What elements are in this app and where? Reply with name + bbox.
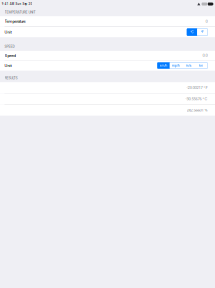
- staticText: 9:41 AM: [2, 2, 14, 6]
- staticText: °F: [201, 30, 204, 34]
- button[interactable]: °C: [187, 28, 197, 36]
- staticText: Speed: [4, 53, 15, 58]
- staticText: Temperature: [4, 19, 25, 24]
- button[interactable]: m/s: [182, 62, 195, 69]
- staticText: mp/h: [172, 64, 180, 67]
- button[interactable]: kn: [195, 62, 208, 69]
- staticText: 0: [206, 19, 208, 24]
- staticText: km/h: [159, 64, 167, 67]
- staticText: SPEED: [4, 45, 14, 49]
- button[interactable]: [0, 93, 215, 104]
- staticText: Sun Sep 20: [15, 2, 32, 6]
- button[interactable]: [0, 82, 215, 93]
- staticText: Unit: [4, 30, 11, 35]
- button[interactable]: Temperature: [0, 16, 215, 26]
- button[interactable]: Speed: [0, 51, 215, 60]
- staticText: 242.56601 %: [187, 108, 208, 113]
- staticText: m/s: [186, 64, 192, 67]
- staticText: Unit: [4, 63, 11, 68]
- staticText: °C: [190, 30, 193, 34]
- button[interactable]: [0, 105, 215, 116]
- staticText: RESULTS: [4, 76, 17, 80]
- staticText: TEMPERATURE UNIT: [4, 10, 35, 14]
- button[interactable]: °F: [197, 28, 208, 36]
- button[interactable]: km/h: [157, 62, 170, 69]
- staticText: kn: [199, 64, 203, 67]
- button[interactable]: mp/h: [170, 62, 182, 69]
- staticText: -23.00217 °F: [187, 85, 208, 90]
- staticText: -30.55676 °C: [186, 96, 208, 101]
- staticText: 0.0: [203, 53, 208, 58]
